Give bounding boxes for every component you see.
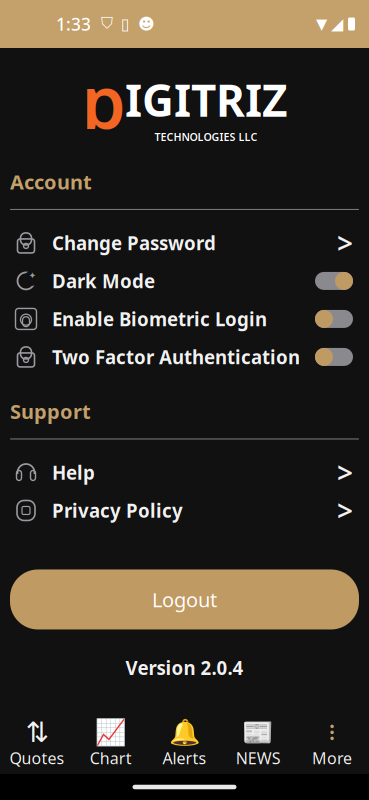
staticText: Two Factor Authentication (52, 344, 300, 369)
staticText: TECHNOLOGIES LLC (154, 130, 257, 144)
staticText: > (337, 492, 353, 529)
staticText: Logout (152, 586, 217, 613)
staticText: > (337, 454, 353, 491)
staticText: Alerts (162, 747, 206, 769)
button[interactable]: Change Password (0, 224, 369, 262)
button[interactable]: 📈 (74, 719, 148, 771)
staticText: Dark Mode (52, 268, 155, 293)
staticText: Version 2.0.4 (125, 655, 243, 680)
staticText: ▯ (121, 15, 130, 33)
staticText: Chart (90, 747, 132, 769)
button[interactable]: Enable Biometric Login (0, 300, 369, 338)
button[interactable]: More (295, 719, 369, 771)
staticText: ◢ (331, 15, 343, 33)
staticText: 🔔 (168, 718, 200, 747)
staticText: Privacy Policy (52, 498, 183, 523)
staticText: Support (10, 398, 91, 424)
staticText: Enable Biometric Login (52, 306, 267, 331)
staticText: Help (52, 460, 95, 485)
staticText: ✦ (28, 270, 36, 281)
staticText: 📈 (95, 718, 127, 747)
staticText: Account (10, 168, 92, 195)
staticText: 1:33 (56, 12, 91, 35)
button[interactable]: Two Factor Authentication (0, 338, 369, 376)
staticText: ⇅ (25, 716, 48, 748)
button[interactable]: ⇅ (0, 719, 74, 771)
staticText: More (312, 747, 352, 769)
staticText: 📰 (242, 718, 274, 747)
staticText: ⛉ (101, 16, 113, 32)
staticText: Change Password (52, 230, 216, 255)
staticText: ▼ (316, 16, 327, 32)
staticText: ☻ (138, 15, 155, 33)
button[interactable]: Privacy Policy (0, 491, 369, 529)
staticText: NEWS (236, 747, 281, 769)
button[interactable]: 📰 (221, 719, 295, 771)
staticText: IGITRIZ (125, 70, 287, 129)
staticText: > (337, 224, 353, 261)
staticText: Ɒ (82, 70, 125, 144)
staticText: Quotes (9, 747, 64, 769)
button[interactable]: 🔔 (148, 719, 221, 771)
button[interactable]: ✦ (0, 262, 369, 300)
button[interactable]: Help (0, 453, 369, 491)
button[interactable]: Logout (10, 569, 359, 629)
